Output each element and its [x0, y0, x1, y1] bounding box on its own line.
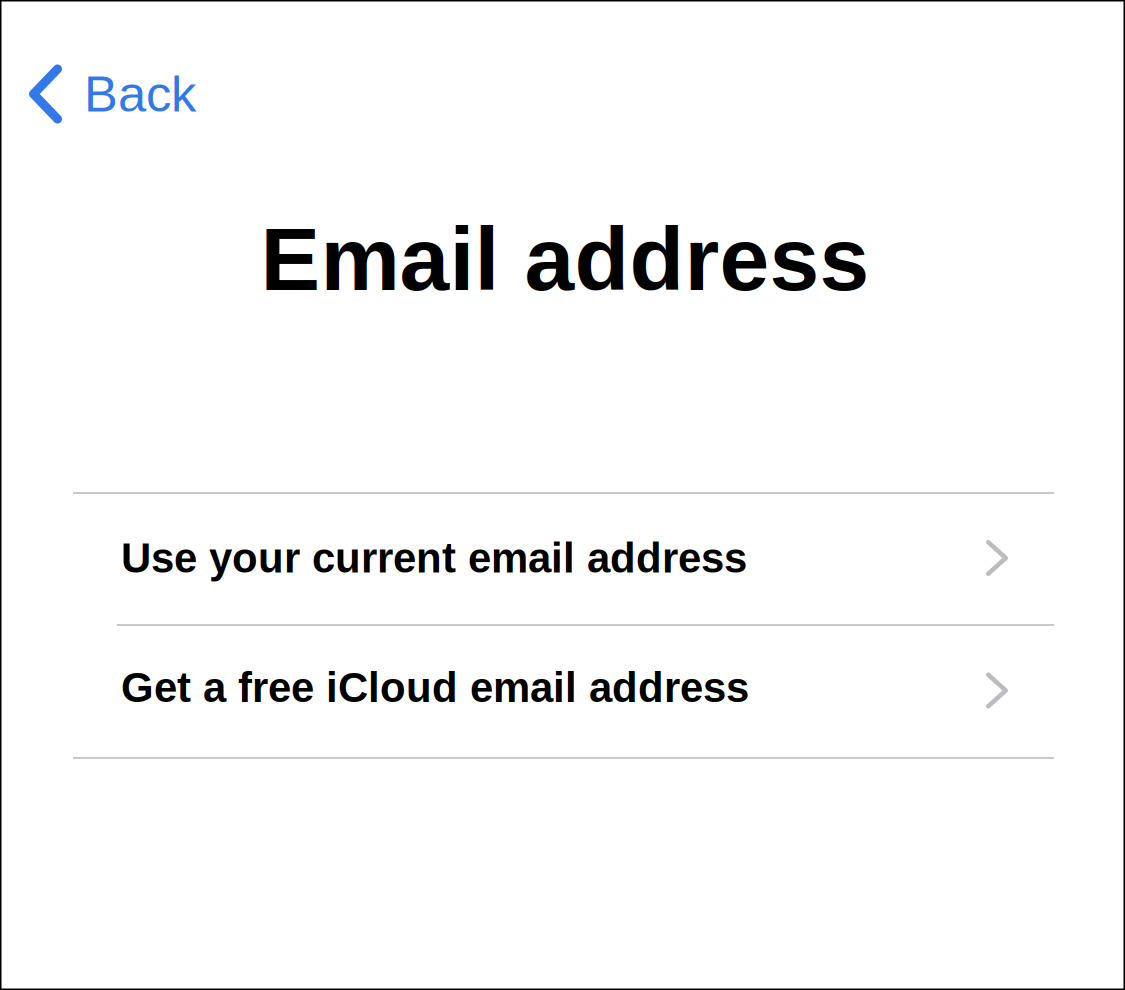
staticText: Email address: [260, 209, 869, 309]
staticText: Get a free iCloud email address: [121, 664, 749, 711]
button[interactable]: Back: [0, 44, 218, 144]
staticText: Use your current email address: [121, 535, 747, 581]
button[interactable]: Get a free iCloud email address: [0, 621, 1125, 754]
staticText: Back: [84, 66, 196, 122]
button[interactable]: Use your current email address: [0, 492, 1125, 624]
